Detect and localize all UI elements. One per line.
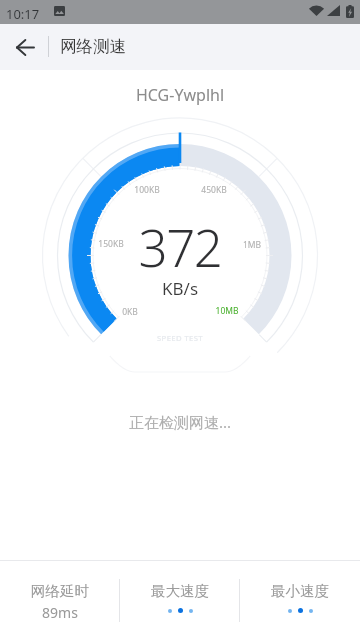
staticText: 1MB [212,239,292,251]
staticText: 正在检测网速... [0,412,360,432]
staticText: 10MB [187,305,267,317]
staticText: 网络延时 [0,582,120,600]
staticText: KB/s [0,277,360,300]
staticText: 100KB [107,184,187,196]
staticText: HCG-Ywplhl [0,84,360,106]
staticText: 最大速度 [120,582,240,600]
button[interactable]: 网络延时 [0,564,120,636]
staticText: 最小速度 [240,582,360,600]
button[interactable]: 最大速度 [120,564,240,636]
button[interactable]: 最小速度 [240,564,360,636]
staticText: SPEED TEST [0,333,360,343]
staticText: 网络测速 [60,36,127,57]
staticText: 372 [0,212,360,281]
button[interactable]: Back [2,24,48,70]
staticText: 450KB [174,184,254,196]
staticText: 10:17 [6,5,40,23]
staticText: 150KB [71,238,151,250]
staticText: 89ms [0,603,120,622]
staticText: 0KB [90,306,170,318]
